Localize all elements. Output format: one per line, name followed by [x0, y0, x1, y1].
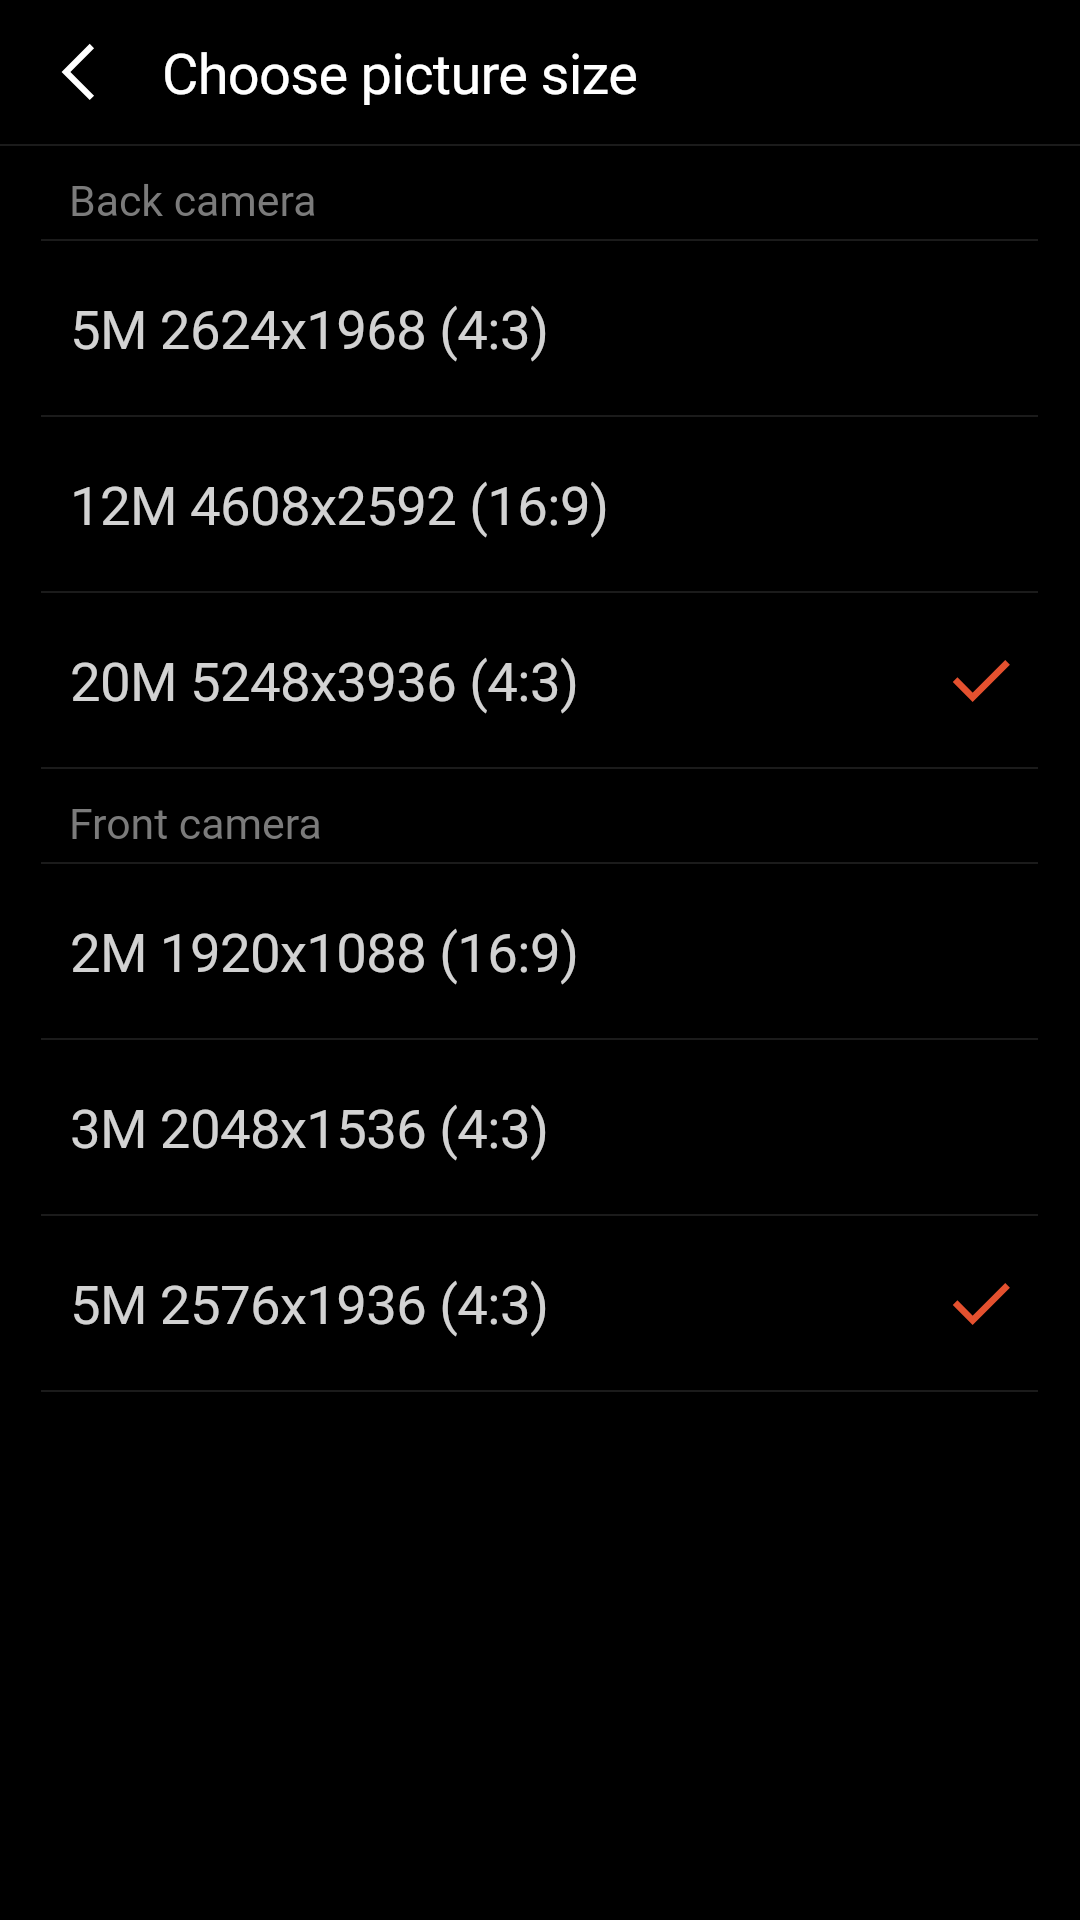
staticText: Back camera — [69, 176, 317, 226]
button[interactable]: 20M 5248x3936 (4:3) — [0, 593, 1080, 767]
button[interactable]: 3M 2048x1536 (4:3) — [0, 1040, 1080, 1214]
button[interactable]: 12M 4608x2592 (16:9) — [0, 417, 1080, 591]
button[interactable]: 5M 2576x1936 (4:3) — [0, 1216, 1080, 1390]
staticText: 20M 5248x3936 (4:3) — [70, 650, 579, 714]
staticText: 3M 2048x1536 (4:3) — [70, 1097, 549, 1161]
button[interactable]: 2M 1920x1088 (16:9) — [0, 864, 1080, 1038]
staticText: 5M 2576x1936 (4:3) — [70, 1273, 549, 1337]
staticText: 12M 4608x2592 (16:9) — [70, 474, 609, 538]
staticText: 2M 1920x1088 (16:9) — [70, 921, 579, 985]
button[interactable]: 5M 2624x1968 (4:3) — [0, 241, 1080, 415]
staticText: Choose picture size — [162, 42, 638, 108]
button[interactable]: Navigate up — [0, 0, 144, 144]
staticText: Front camera — [69, 799, 322, 849]
staticText: 5M 2624x1968 (4:3) — [70, 298, 549, 362]
